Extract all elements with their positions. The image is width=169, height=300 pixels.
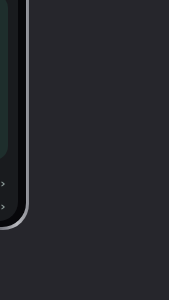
button[interactable]: History xyxy=(0,197,8,217)
button[interactable]: Session xyxy=(0,0,8,160)
other: Open History xyxy=(0,204,6,210)
other: Open Activity log xyxy=(0,181,6,187)
button[interactable]: Activity log xyxy=(0,174,8,194)
